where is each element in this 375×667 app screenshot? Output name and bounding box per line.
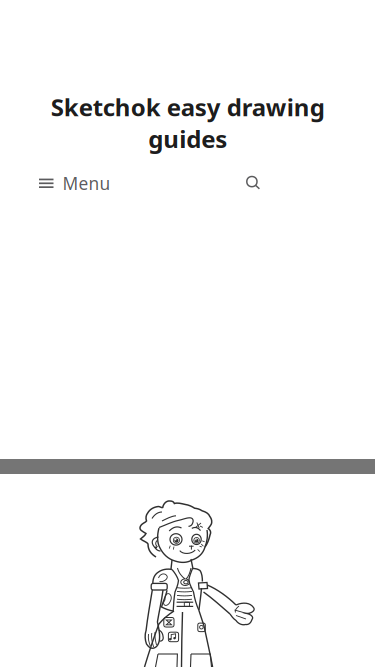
staticText: Sketchok easy drawing guides — [50, 91, 324, 155]
staticText: Menu — [62, 172, 110, 195]
button[interactable]: Search — [239, 169, 267, 197]
button[interactable]: Menu — [37, 165, 112, 202]
